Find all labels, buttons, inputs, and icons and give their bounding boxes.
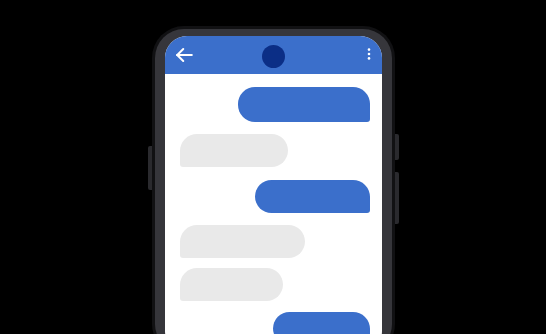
button[interactable] xyxy=(273,312,370,334)
button[interactable]: More options xyxy=(359,44,379,64)
button[interactable] xyxy=(238,87,370,122)
button[interactable] xyxy=(180,134,288,167)
button[interactable]: Back xyxy=(171,42,197,68)
button[interactable] xyxy=(180,225,305,258)
button[interactable] xyxy=(255,180,370,213)
button[interactable] xyxy=(180,268,283,301)
